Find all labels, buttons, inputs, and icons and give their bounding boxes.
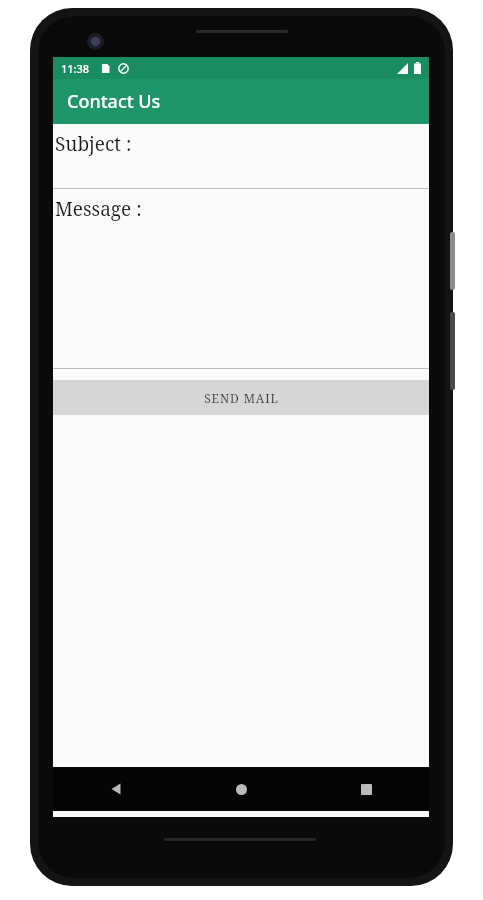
- button[interactable]: Message :: [53, 189, 429, 368]
- staticText: SEND MAIL: [204, 390, 279, 406]
- button[interactable]: Recent apps: [304, 767, 429, 811]
- staticText: Contact Us: [67, 89, 161, 114]
- staticText: 11:38: [61, 61, 90, 76]
- button[interactable]: SEND MAIL: [53, 380, 429, 415]
- button[interactable]: Back: [53, 767, 179, 811]
- staticText: Subject :: [55, 131, 132, 157]
- button[interactable]: Home: [179, 767, 304, 811]
- staticText: Message :: [55, 196, 142, 222]
- button[interactable]: Subject :: [53, 124, 429, 188]
